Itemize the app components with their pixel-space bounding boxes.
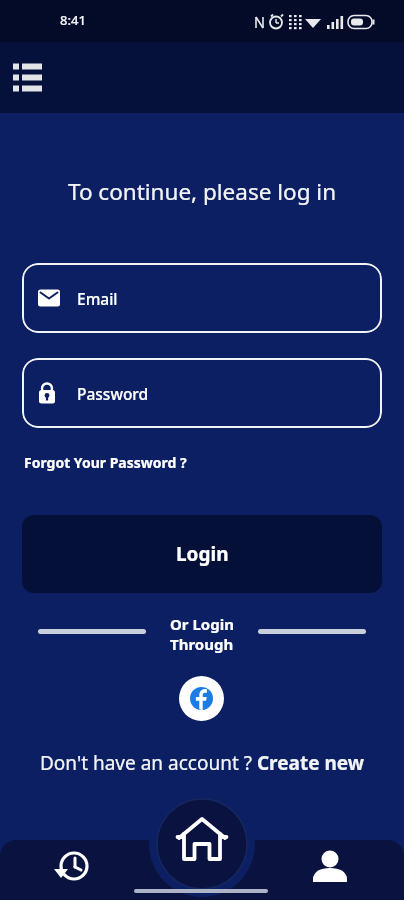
staticText: Forgot Your Password ? xyxy=(24,453,187,472)
staticText: 8:41 xyxy=(60,11,86,29)
button[interactable] xyxy=(134,840,269,900)
button[interactable]: Login xyxy=(22,515,382,593)
staticText: To continue, please log in xyxy=(0,176,404,207)
button[interactable] xyxy=(269,840,404,900)
staticText: Or Login xyxy=(170,614,234,634)
button[interactable]: Password xyxy=(22,358,382,428)
button[interactable] xyxy=(8,58,48,98)
button[interactable] xyxy=(179,676,224,721)
button[interactable]: Email xyxy=(22,263,382,333)
staticText: Email xyxy=(77,288,118,309)
staticText: Through xyxy=(170,634,234,654)
button[interactable] xyxy=(0,840,134,900)
button[interactable]: Forgot Your Password ? xyxy=(22,451,189,474)
staticText: Don't have an account ? Create new xyxy=(0,750,404,776)
button[interactable]: Don't have an account ? Create new xyxy=(0,750,404,776)
staticText: Password xyxy=(77,383,149,404)
staticText: Login xyxy=(176,541,229,567)
